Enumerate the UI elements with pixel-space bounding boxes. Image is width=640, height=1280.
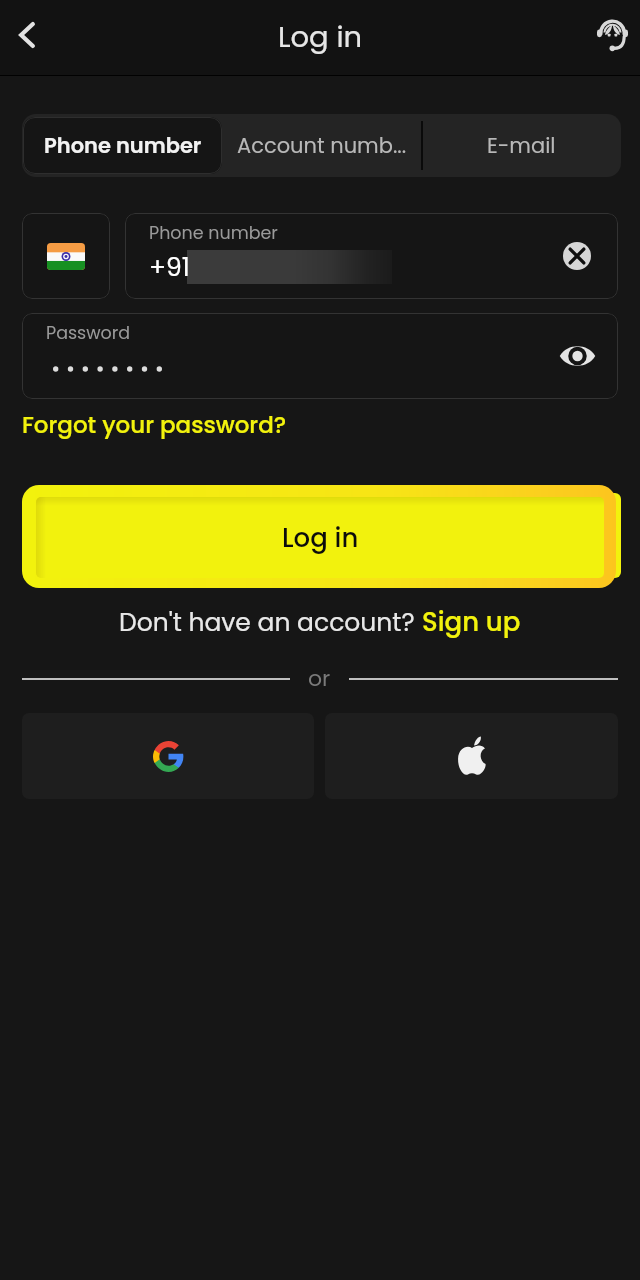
button[interactable]: Phone number	[125, 213, 618, 299]
button[interactable]: Show password	[557, 336, 597, 376]
button[interactable]: Sign in with Apple	[325, 713, 618, 799]
staticText: Account numb...	[237, 131, 407, 160]
staticText: +91	[149, 250, 190, 285]
button[interactable]: Phone number	[23, 117, 222, 174]
button[interactable]: Forgot your password?	[22, 409, 287, 441]
staticText: or	[308, 663, 331, 694]
button[interactable]: Clear	[557, 236, 597, 276]
button[interactable]: Back	[4, 12, 50, 58]
staticText: Phone number	[149, 221, 278, 246]
button[interactable]: Account numb...	[222, 114, 421, 177]
button[interactable]: Sign up	[422, 604, 521, 640]
staticText: Log in	[278, 17, 363, 58]
button[interactable]: E-mail	[422, 114, 621, 177]
button[interactable]: Sign in with Google	[22, 713, 314, 799]
staticText: Don't have an account?	[119, 605, 422, 640]
button[interactable]: Country code	[22, 213, 110, 299]
button[interactable]: Password	[22, 313, 618, 399]
button[interactable]: Customer support	[585, 8, 639, 62]
staticText: E-mail	[487, 131, 556, 160]
staticText: Forgot your password?	[22, 409, 287, 441]
staticText: Log in	[282, 520, 359, 556]
button[interactable]: Log in	[22, 485, 616, 588]
staticText: Password	[46, 321, 131, 346]
staticText: Phone number	[44, 131, 202, 160]
